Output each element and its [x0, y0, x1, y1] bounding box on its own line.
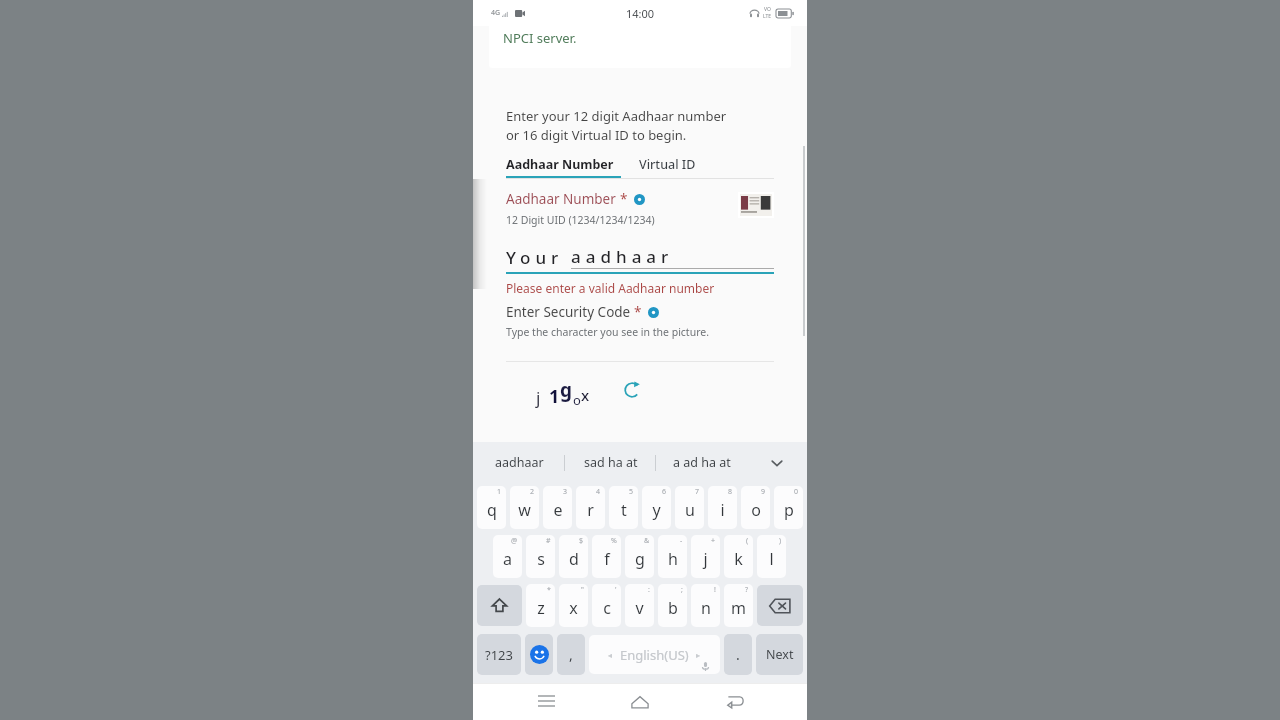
staticText: aadhaar: [495, 454, 544, 471]
staticText: o: [751, 499, 761, 521]
staticText: English(US): [620, 646, 689, 664]
button[interactable]: aadhaar: [473, 442, 565, 483]
staticText: NPCI server.: [503, 29, 577, 47]
staticText: f: [604, 548, 610, 570]
staticText: p: [784, 499, 794, 521]
button[interactable]: a ad ha at: [656, 442, 747, 483]
button[interactable]: (: [724, 535, 753, 578]
staticText: 1: [497, 487, 502, 497]
button[interactable]: 9: [741, 486, 770, 529]
button[interactable]: ,: [557, 634, 585, 675]
staticText: 2: [530, 487, 535, 497]
button[interactable]: !: [691, 584, 720, 627]
staticText: ': [615, 585, 617, 595]
button[interactable]: 3: [543, 486, 572, 529]
button[interactable]: Refresh captcha: [622, 380, 642, 400]
staticText: @: [511, 536, 518, 546]
staticText: Enter Security Code: [506, 303, 634, 321]
staticText: Please enter a valid Aadhaar number: [506, 280, 715, 296]
button[interactable]: Shift: [477, 585, 522, 626]
button[interactable]: 6: [642, 486, 671, 529]
button[interactable]: 5: [609, 486, 638, 529]
staticText: 8: [728, 487, 733, 497]
staticText: r: [587, 499, 594, 521]
button[interactable]: Home: [618, 683, 662, 720]
staticText: 12 Digit UID (1234/1234/1234): [506, 213, 655, 227]
button[interactable]: :: [625, 584, 654, 627]
button[interactable]: [738, 192, 774, 218]
button[interactable]: 4: [576, 486, 605, 529]
staticText: g: [560, 377, 573, 403]
staticText: *: [620, 190, 628, 208]
staticText: w: [518, 499, 531, 521]
button[interactable]: 0: [774, 486, 803, 529]
staticText: Enter your 12 digit Aadhaar number or 16…: [506, 107, 727, 144]
button[interactable]: 2: [510, 486, 539, 529]
staticText: t: [621, 499, 627, 521]
button[interactable]: +: [691, 535, 720, 578]
staticText: c: [603, 597, 611, 619]
button[interactable]: &: [625, 535, 654, 578]
button[interactable]: %: [592, 535, 621, 578]
button[interactable]: ◂: [589, 635, 720, 674]
button[interactable]: Virtual ID: [639, 156, 696, 178]
button[interactable]: Emoji: [525, 634, 553, 675]
button[interactable]: ?: [724, 584, 753, 627]
button[interactable]: *: [526, 584, 555, 627]
button[interactable]: Backspace: [757, 585, 803, 626]
button[interactable]: Info: [634, 194, 645, 205]
button[interactable]: Next: [756, 634, 803, 675]
staticText: i: [720, 499, 725, 521]
staticText: 3: [563, 487, 568, 497]
button[interactable]: ): [757, 535, 786, 578]
button[interactable]: ?123: [477, 634, 521, 675]
button[interactable]: 8: [708, 486, 737, 529]
staticText: &: [644, 536, 650, 546]
button[interactable]: Back: [713, 683, 757, 720]
staticText: h: [668, 548, 678, 570]
staticText: n: [701, 597, 711, 619]
staticText: a: [503, 548, 512, 570]
button[interactable]: @: [493, 535, 522, 578]
staticText: *: [547, 585, 551, 595]
staticText: Your: [506, 246, 564, 269]
button[interactable]: -: [658, 535, 687, 578]
staticText: Type the character you see in the pictur…: [506, 325, 710, 339]
button[interactable]: $: [559, 535, 588, 578]
staticText: ): [779, 536, 782, 546]
button[interactable]: ': [592, 584, 621, 627]
staticText: b: [668, 597, 678, 619]
staticText: LTE: [763, 13, 772, 20]
staticText: j: [703, 548, 708, 570]
staticText: VO: [764, 6, 771, 13]
staticText: 4: [596, 487, 601, 497]
button[interactable]: #: [526, 535, 555, 578]
staticText: sad ha at: [584, 454, 638, 471]
button[interactable]: Expand suggestions: [747, 442, 807, 483]
button[interactable]: Aadhaar Number: [506, 156, 621, 178]
button[interactable]: Your: [506, 245, 774, 274]
button[interactable]: sad ha at: [565, 442, 656, 483]
staticText: Next: [766, 646, 794, 663]
staticText: Virtual ID: [639, 156, 696, 173]
staticText: 7: [695, 487, 700, 497]
staticText: Aadhaar Number: [506, 190, 620, 208]
button[interactable]: ;: [658, 584, 687, 627]
staticText: 14:00: [626, 6, 655, 21]
staticText: e: [553, 499, 563, 521]
staticText: 1: [549, 384, 560, 409]
button[interactable]: 7: [675, 486, 704, 529]
staticText: d: [569, 548, 579, 570]
staticText: (: [746, 536, 749, 546]
button[interactable]: Info: [648, 307, 659, 318]
staticText: z: [537, 597, 545, 619]
button[interactable]: 1: [477, 486, 506, 529]
staticText: u: [685, 499, 695, 521]
staticText: ": [581, 585, 584, 595]
button[interactable]: Recent apps: [524, 683, 568, 720]
staticText: x: [581, 385, 590, 405]
button[interactable]: ": [559, 584, 588, 627]
staticText: x: [569, 597, 578, 619]
staticText: g: [635, 548, 645, 570]
button[interactable]: .: [724, 634, 752, 675]
